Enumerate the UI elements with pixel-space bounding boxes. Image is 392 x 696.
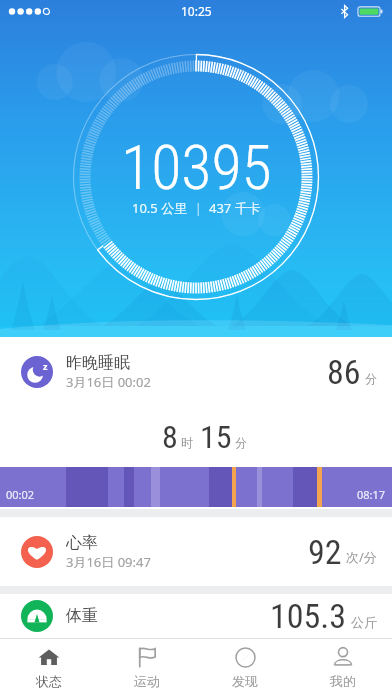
button[interactable]: 运动 [98, 639, 196, 696]
staticText: 10395 [121, 131, 272, 204]
staticText: z [43, 360, 48, 372]
button[interactable]: z [0, 337, 392, 509]
staticText: 运动 [134, 673, 160, 689]
staticText: 00:02 [6, 487, 35, 502]
staticText: 心率 [66, 533, 98, 553]
staticText: 08:17 [357, 487, 386, 502]
staticText: 15 [200, 418, 232, 456]
staticText: 体重 [66, 606, 98, 626]
button[interactable]: 发现 [196, 639, 294, 696]
staticText: 时 [181, 435, 193, 450]
staticText: 发现 [232, 673, 258, 689]
staticText: 105.3 [270, 596, 347, 636]
staticText: 3月16日 00:02 [66, 373, 151, 391]
staticText: | [188, 199, 209, 217]
staticText: 状态 [36, 673, 62, 689]
staticText: 3月16日 09:47 [66, 553, 151, 571]
staticText: 我的 [330, 673, 356, 689]
staticText: 次/分 [346, 548, 377, 566]
staticText: 92 [308, 532, 342, 572]
staticText: 公斤 [351, 614, 377, 630]
button[interactable]: 体重 [0, 594, 392, 638]
button[interactable]: 心率 [0, 517, 392, 586]
staticText: 分 [365, 371, 377, 386]
button[interactable]: 我的 [294, 639, 392, 696]
staticText: 10:25 [181, 3, 212, 19]
staticText: 8 [162, 418, 178, 456]
staticText: 10.5 公里 [132, 199, 188, 217]
staticText: 分 [235, 435, 247, 450]
button[interactable]: 状态 [0, 639, 98, 696]
staticText: 86 [327, 352, 361, 392]
staticText: 昨晚睡眠 [66, 353, 130, 373]
staticText: 437 千卡 [209, 199, 261, 217]
